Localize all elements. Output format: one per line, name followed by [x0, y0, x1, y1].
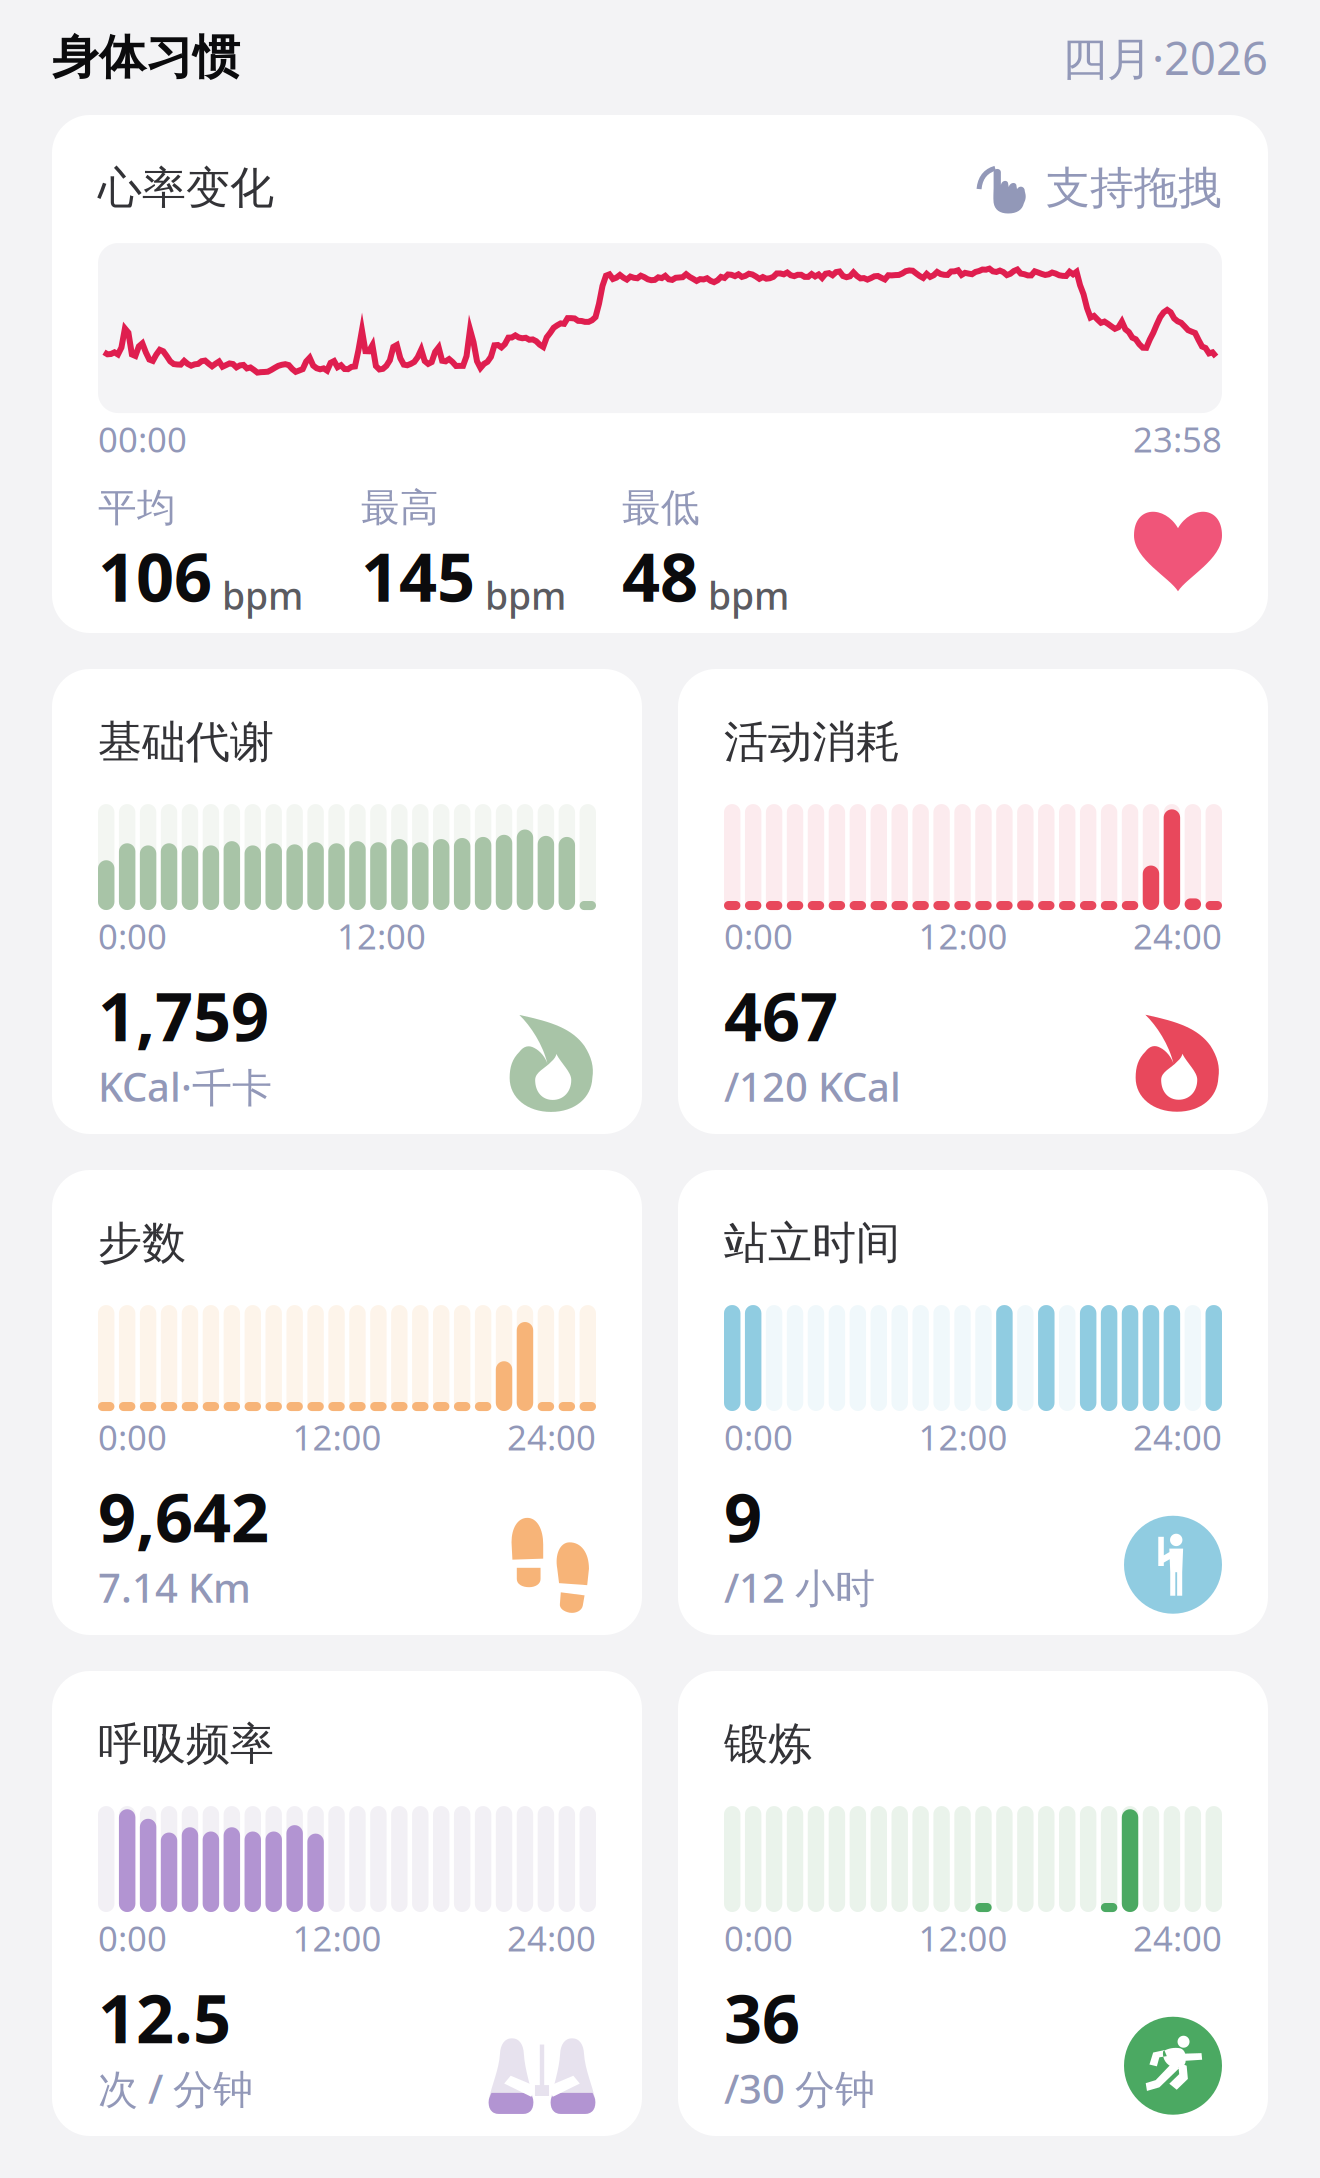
- staticText: bpm: [222, 570, 303, 620]
- staticText: 9,642: [98, 1472, 269, 1561]
- staticText: 7.14 Km: [98, 1561, 251, 1614]
- staticText: 106: [98, 532, 212, 620]
- staticText: bpm: [708, 570, 789, 620]
- staticText: 12:00: [918, 1915, 1007, 1961]
- staticText: 呼吸频率: [98, 1717, 274, 1771]
- staticText: 24:00: [1133, 913, 1222, 959]
- staticText: 23:58: [1133, 416, 1222, 462]
- button[interactable]: 活动消耗: [678, 669, 1268, 1134]
- staticText: 9: [724, 1472, 762, 1561]
- staticText: 00:00: [98, 416, 187, 462]
- staticText: /120 KCal: [724, 1060, 901, 1113]
- staticText: 24:00: [1133, 1915, 1222, 1961]
- staticText: 0:00: [98, 913, 167, 959]
- button[interactable]: 呼吸频率: [52, 1671, 642, 2136]
- staticText: 12.5: [98, 1973, 231, 2062]
- button[interactable]: 基础代谢: [52, 669, 642, 1134]
- staticText: /30 分钟: [724, 2062, 875, 2115]
- staticText: 基础代谢: [98, 715, 274, 769]
- staticText: /12 小时: [724, 1561, 875, 1614]
- staticText: 1,759: [98, 971, 269, 1060]
- staticText: 次 / 分钟: [98, 2062, 253, 2115]
- button[interactable]: 站立时间: [678, 1170, 1268, 1635]
- staticText: 最低: [622, 484, 700, 532]
- staticText: 12:00: [918, 1414, 1007, 1460]
- staticText: 0:00: [724, 1915, 793, 1961]
- staticText: 锻炼: [724, 1717, 812, 1771]
- staticText: 0:00: [98, 1915, 167, 1961]
- staticText: 145: [361, 532, 475, 620]
- staticText: 36: [724, 1973, 800, 2062]
- staticText: 步数: [98, 1216, 186, 1270]
- staticText: 24:00: [507, 1414, 596, 1460]
- staticText: 最高: [361, 484, 439, 532]
- staticText: 12:00: [292, 1915, 381, 1961]
- staticText: 48: [622, 532, 698, 620]
- staticText: 12:00: [918, 913, 1007, 959]
- button[interactable]: 四月·2026: [1062, 27, 1268, 88]
- staticText: 24:00: [507, 1915, 596, 1961]
- staticText: 12:00: [292, 1414, 381, 1460]
- staticText: 活动消耗: [724, 715, 900, 769]
- staticText: 467: [724, 971, 838, 1060]
- staticText: KCal·千卡: [98, 1060, 272, 1113]
- staticText: 24:00: [1133, 1414, 1222, 1460]
- staticText: 12:00: [337, 913, 426, 959]
- staticText: 平均: [98, 484, 176, 532]
- staticText: 站立时间: [724, 1216, 900, 1270]
- button[interactable]: 锻炼: [678, 1671, 1268, 2136]
- staticText: 身体习惯: [52, 29, 240, 86]
- staticText: bpm: [485, 570, 566, 620]
- button[interactable]: 心率变化: [52, 115, 1268, 633]
- staticText: 四月·2026: [1062, 27, 1268, 88]
- button[interactable]: 步数: [52, 1170, 642, 1635]
- staticText: 0:00: [724, 913, 793, 959]
- staticText: 支持拖拽: [1046, 161, 1222, 215]
- staticText: 0:00: [98, 1414, 167, 1460]
- staticText: 0:00: [724, 1414, 793, 1460]
- staticText: 心率变化: [98, 161, 274, 215]
